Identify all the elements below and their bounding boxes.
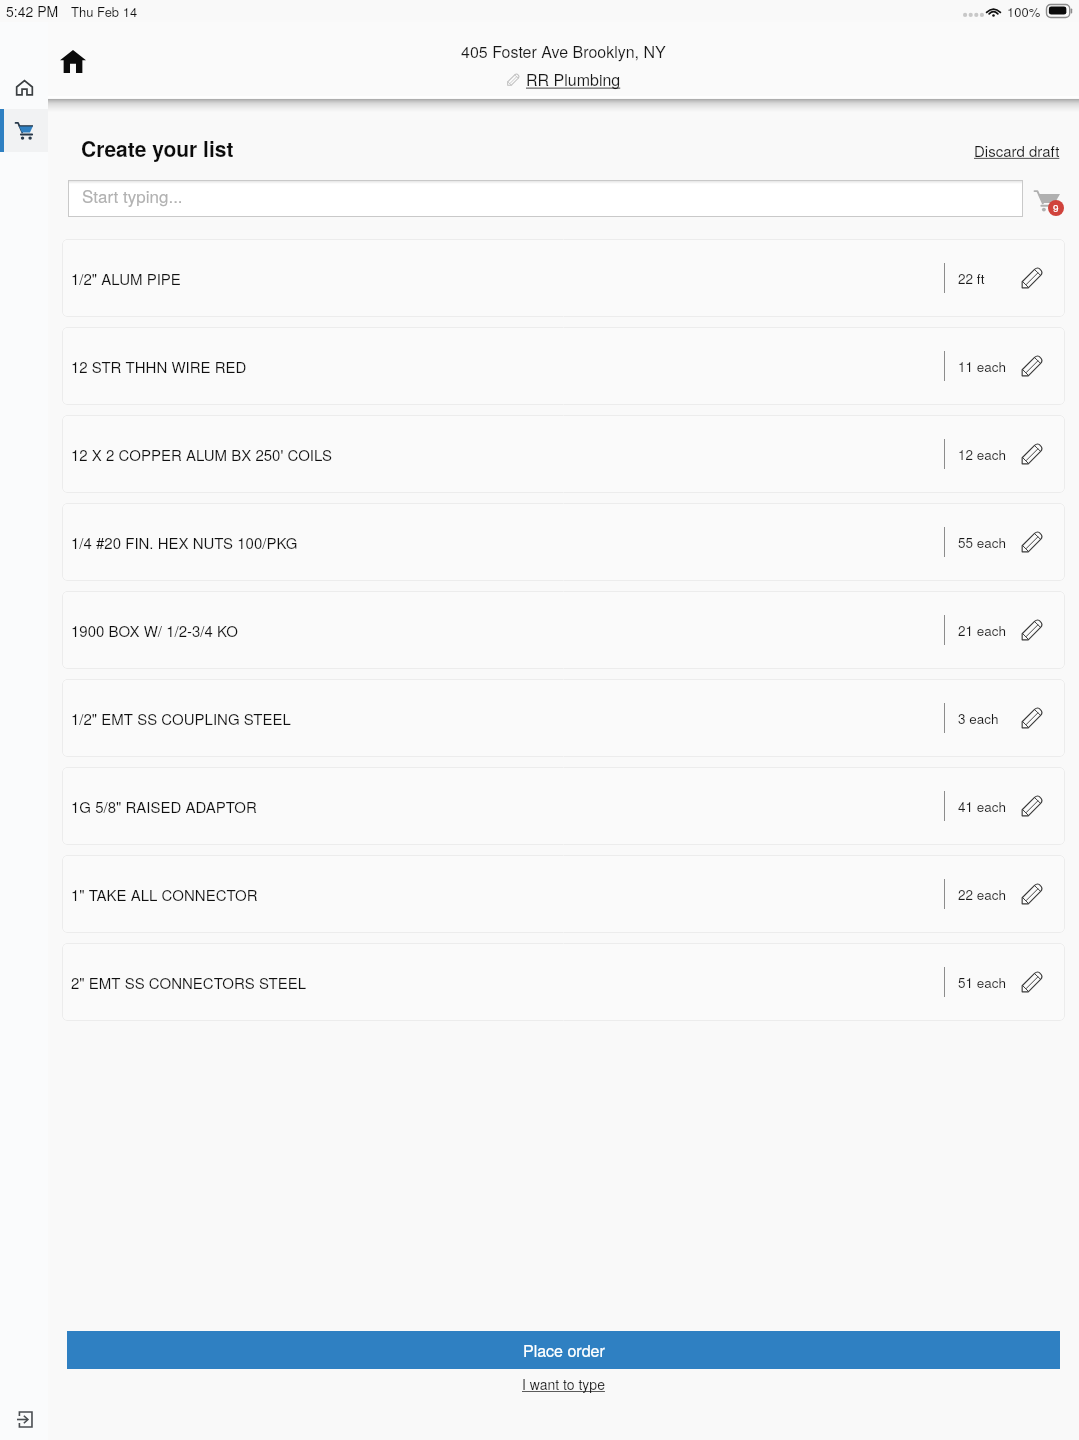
button[interactable]: 1G 5/8" RAISED ADAPTOR	[62, 767, 1065, 845]
staticText: 100%	[1007, 2, 1041, 21]
button[interactable]: 1/2" ALUM PIPE	[62, 239, 1065, 317]
staticText: 22 each	[958, 885, 1007, 904]
button[interactable]: 1/4 #20 FIN. HEX NUTS 100/PKG	[62, 503, 1065, 581]
staticText: 12 each	[958, 445, 1007, 464]
button[interactable]: Edit	[1020, 767, 1065, 845]
button[interactable]: Home	[50, 38, 94, 82]
staticText: 9	[1053, 201, 1059, 215]
staticText: Discard draft	[974, 140, 1060, 161]
staticText: Thu Feb 14	[71, 2, 138, 21]
staticText: 41 each	[958, 797, 1007, 816]
staticText: 5:42 PM	[6, 1, 59, 21]
button[interactable]: Edit	[1020, 855, 1065, 933]
button[interactable]: RR Plumbing	[507, 68, 621, 91]
staticText: 1/2" EMT SS COUPLING STEEL	[71, 708, 944, 729]
button[interactable]: 1" TAKE ALL CONNECTOR	[62, 855, 1065, 933]
button[interactable]: Cart	[0, 109, 48, 152]
button[interactable]: Edit	[1020, 943, 1065, 1021]
button[interactable]: Discard draft	[974, 140, 1060, 161]
button[interactable]: Edit	[1020, 415, 1065, 493]
staticText: 12 STR THHN WIRE RED	[71, 356, 944, 377]
button[interactable]: Edit	[1020, 503, 1065, 581]
button[interactable]: Home	[0, 66, 48, 109]
button[interactable]: 1/2" EMT SS COUPLING STEEL	[62, 679, 1065, 757]
button[interactable]: Edit	[1020, 327, 1065, 405]
button[interactable]: Edit	[1020, 591, 1065, 669]
staticText: 11 each	[958, 357, 1007, 376]
staticText: 55 each	[958, 533, 1007, 552]
button[interactable]: Start typing...	[68, 180, 1023, 217]
staticText: I want to type	[522, 1374, 605, 1394]
staticText: 1" TAKE ALL CONNECTOR	[71, 884, 944, 905]
button[interactable]: Place order	[67, 1331, 1060, 1369]
staticText: Start typing...	[82, 183, 183, 207]
button[interactable]: 1900 BOX W/ 1/2-3/4 KO	[62, 591, 1065, 669]
staticText: 405 Foster Ave Brooklyn, NY	[461, 40, 666, 63]
staticText: Create your list	[81, 133, 234, 163]
button[interactable]: I want to type	[522, 1374, 605, 1394]
button[interactable]: 12 X 2 COPPER ALUM BX 250' COILS	[62, 415, 1065, 493]
button[interactable]: 12 STR THHN WIRE RED	[62, 327, 1065, 405]
staticText: 2" EMT SS CONNECTORS STEEL	[71, 972, 944, 993]
staticText: 22 ft	[958, 269, 985, 288]
staticText: 1/4 #20 FIN. HEX NUTS 100/PKG	[71, 532, 944, 553]
staticText: Place order	[523, 1339, 605, 1362]
button[interactable]: Edit	[1020, 239, 1065, 317]
button[interactable]: Log out	[13, 1408, 35, 1430]
staticText: 1/2" ALUM PIPE	[71, 268, 944, 289]
button[interactable]: 2" EMT SS CONNECTORS STEEL	[62, 943, 1065, 1021]
staticText: 3 each	[958, 709, 999, 728]
staticText: 21 each	[958, 621, 1007, 640]
button[interactable]: Edit	[1020, 679, 1065, 757]
staticText: 12 X 2 COPPER ALUM BX 250' COILS	[71, 444, 944, 465]
button[interactable]: Cart	[1026, 168, 1070, 212]
staticText: RR Plumbing	[526, 68, 621, 91]
staticText: 1G 5/8" RAISED ADAPTOR	[71, 796, 944, 817]
staticText: 51 each	[958, 973, 1007, 992]
staticText: 1900 BOX W/ 1/2-3/4 KO	[71, 620, 944, 641]
